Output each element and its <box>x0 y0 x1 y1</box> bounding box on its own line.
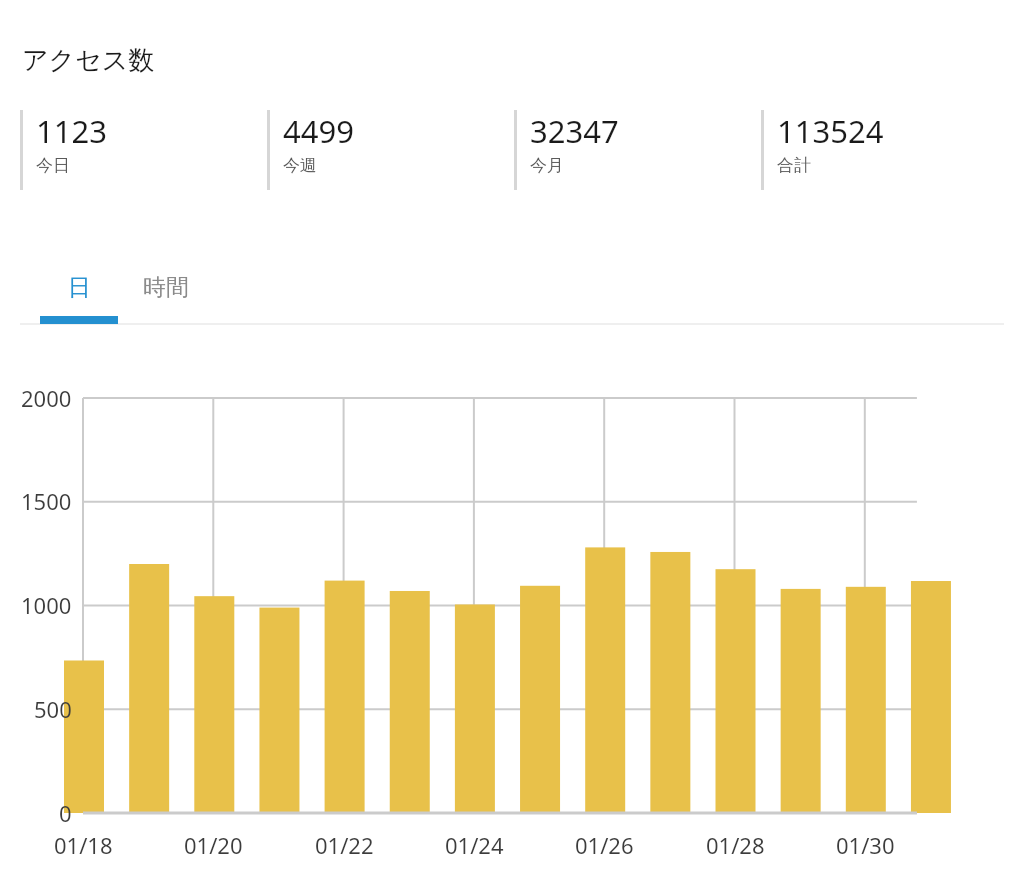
staticText: 4499 <box>283 110 354 152</box>
staticText: 時間 <box>143 273 189 302</box>
staticText: 32347 <box>530 110 619 152</box>
staticText: 113524 <box>777 110 884 152</box>
staticText: 01/30 <box>836 830 895 860</box>
button[interactable]: 4499 <box>267 110 514 190</box>
staticText: 日 <box>68 273 91 302</box>
staticText: 01/28 <box>706 830 765 860</box>
staticText: 今週 <box>283 155 317 176</box>
staticText: 0 <box>59 798 72 828</box>
button[interactable]: 日 <box>40 258 118 316</box>
staticText: 01/18 <box>54 830 113 860</box>
staticText: 01/20 <box>184 830 243 860</box>
staticText: 2000 <box>21 383 72 413</box>
staticText: アクセス数 <box>22 44 155 77</box>
staticText: 500 <box>34 694 72 724</box>
staticText: 01/26 <box>575 830 634 860</box>
staticText: 1500 <box>21 486 72 516</box>
staticText: 1123 <box>36 110 107 152</box>
button[interactable]: 時間 <box>118 258 214 316</box>
staticText: 1000 <box>21 590 72 620</box>
staticText: 今月 <box>530 155 564 176</box>
staticText: 今日 <box>36 155 70 176</box>
button[interactable]: 113524 <box>761 110 1008 190</box>
button[interactable]: 1123 <box>20 110 267 190</box>
staticText: 01/24 <box>445 830 504 860</box>
staticText: 01/22 <box>315 830 374 860</box>
staticText: 合計 <box>777 155 811 176</box>
button[interactable]: 32347 <box>514 110 761 190</box>
